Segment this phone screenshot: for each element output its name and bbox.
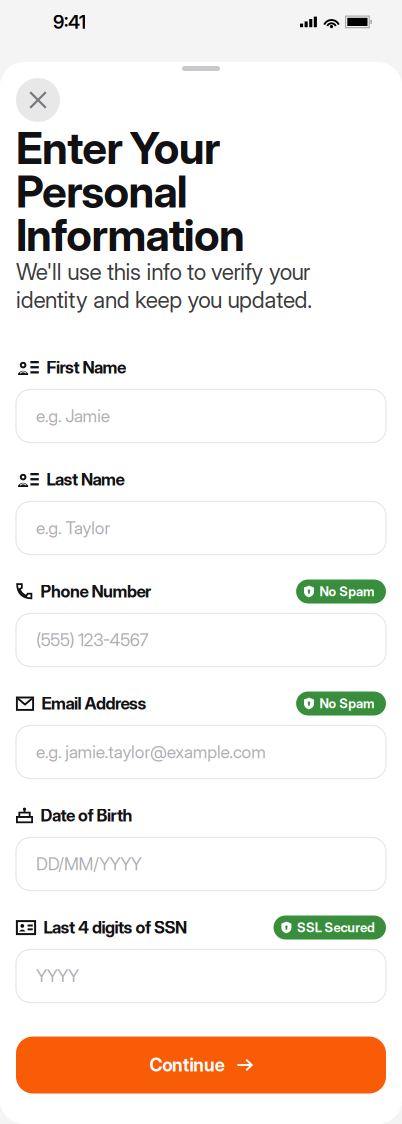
staticText: No Spam: [320, 584, 375, 599]
staticText: Enter Your: [16, 121, 220, 174]
staticText: Phone Number: [40, 581, 151, 602]
staticText: We'll use this info to verify your: [16, 258, 310, 285]
staticText: Last 4 digits of SSN: [43, 917, 187, 938]
staticText: YYYY: [36, 965, 79, 986]
button[interactable]: Close: [16, 78, 60, 122]
staticText: Email Address: [41, 693, 146, 714]
staticText: e.g. Taylor: [36, 517, 110, 538]
button[interactable]: Continue: [16, 1036, 386, 1093]
staticText: 9:41: [53, 11, 86, 33]
staticText: e.g. Jamie: [36, 405, 110, 426]
staticText: No Spam: [320, 696, 375, 711]
staticText: Information: [16, 208, 245, 261]
staticText: Date of Birth: [40, 805, 132, 826]
staticText: (555) 123-4567: [36, 629, 148, 650]
staticText: DD/MM/YYYY: [36, 853, 142, 874]
staticText: Personal: [16, 165, 188, 218]
staticText: SSL Secured: [297, 920, 375, 935]
staticText: Last Name: [46, 469, 124, 490]
staticText: identity and keep you updated.: [16, 286, 312, 313]
staticText: First Name: [46, 357, 126, 378]
staticText: Continue: [149, 1054, 225, 1076]
staticText: e.g. jamie.taylor@example.com: [36, 741, 266, 762]
